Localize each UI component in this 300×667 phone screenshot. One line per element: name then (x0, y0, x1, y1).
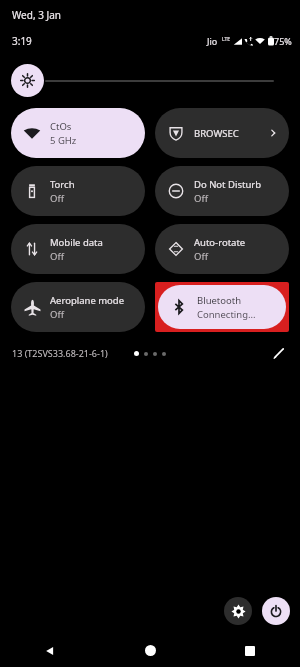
button[interactable]: Do Not Disturb (155, 166, 289, 216)
staticText: BROWSEC (194, 127, 267, 140)
button[interactable]: Power (262, 597, 290, 625)
button[interactable]: Torch (11, 166, 145, 216)
staticText: Jio (207, 35, 218, 47)
staticText: Do Not Disturb (194, 178, 262, 191)
button[interactable]: Aeroplane mode (11, 282, 145, 332)
button[interactable]: Recents (200, 634, 300, 667)
button[interactable]: Back (0, 634, 100, 667)
staticText: 5 GHz (50, 134, 77, 147)
staticText: Bluetooth (197, 294, 242, 307)
staticText: 3:19 (12, 34, 32, 48)
button[interactable]: Brightness slider (0, 64, 300, 97)
staticText: Torch (50, 178, 75, 191)
staticText: Off (194, 250, 208, 263)
staticText: Mobile data (50, 236, 103, 249)
button[interactable]: Home (100, 634, 200, 667)
button[interactable]: CtOs (11, 108, 145, 158)
staticText: CtOs (50, 120, 72, 133)
staticText: Connecting... (197, 308, 256, 321)
staticText: Aeroplane mode (50, 294, 125, 307)
staticText: 75% (274, 35, 292, 47)
staticText: Auto-rotate (194, 236, 246, 249)
staticText: Off (50, 308, 64, 321)
button[interactable]: Edit tiles (268, 342, 290, 364)
staticText: Off (50, 192, 64, 205)
staticText: 13 (T2SVS33.68-21-6-1) (12, 347, 108, 359)
staticText: LTE (222, 36, 231, 43)
button[interactable]: Bluetooth (158, 285, 286, 329)
button[interactable]: Auto-rotate (155, 224, 289, 274)
staticText: Wed, 3 Jan (12, 8, 62, 22)
staticText: Off (50, 250, 64, 263)
button[interactable]: Settings (224, 597, 252, 625)
button[interactable]: Mobile data (11, 224, 145, 274)
staticText: Off (194, 192, 208, 205)
button[interactable]: BROWSEC (155, 108, 289, 158)
